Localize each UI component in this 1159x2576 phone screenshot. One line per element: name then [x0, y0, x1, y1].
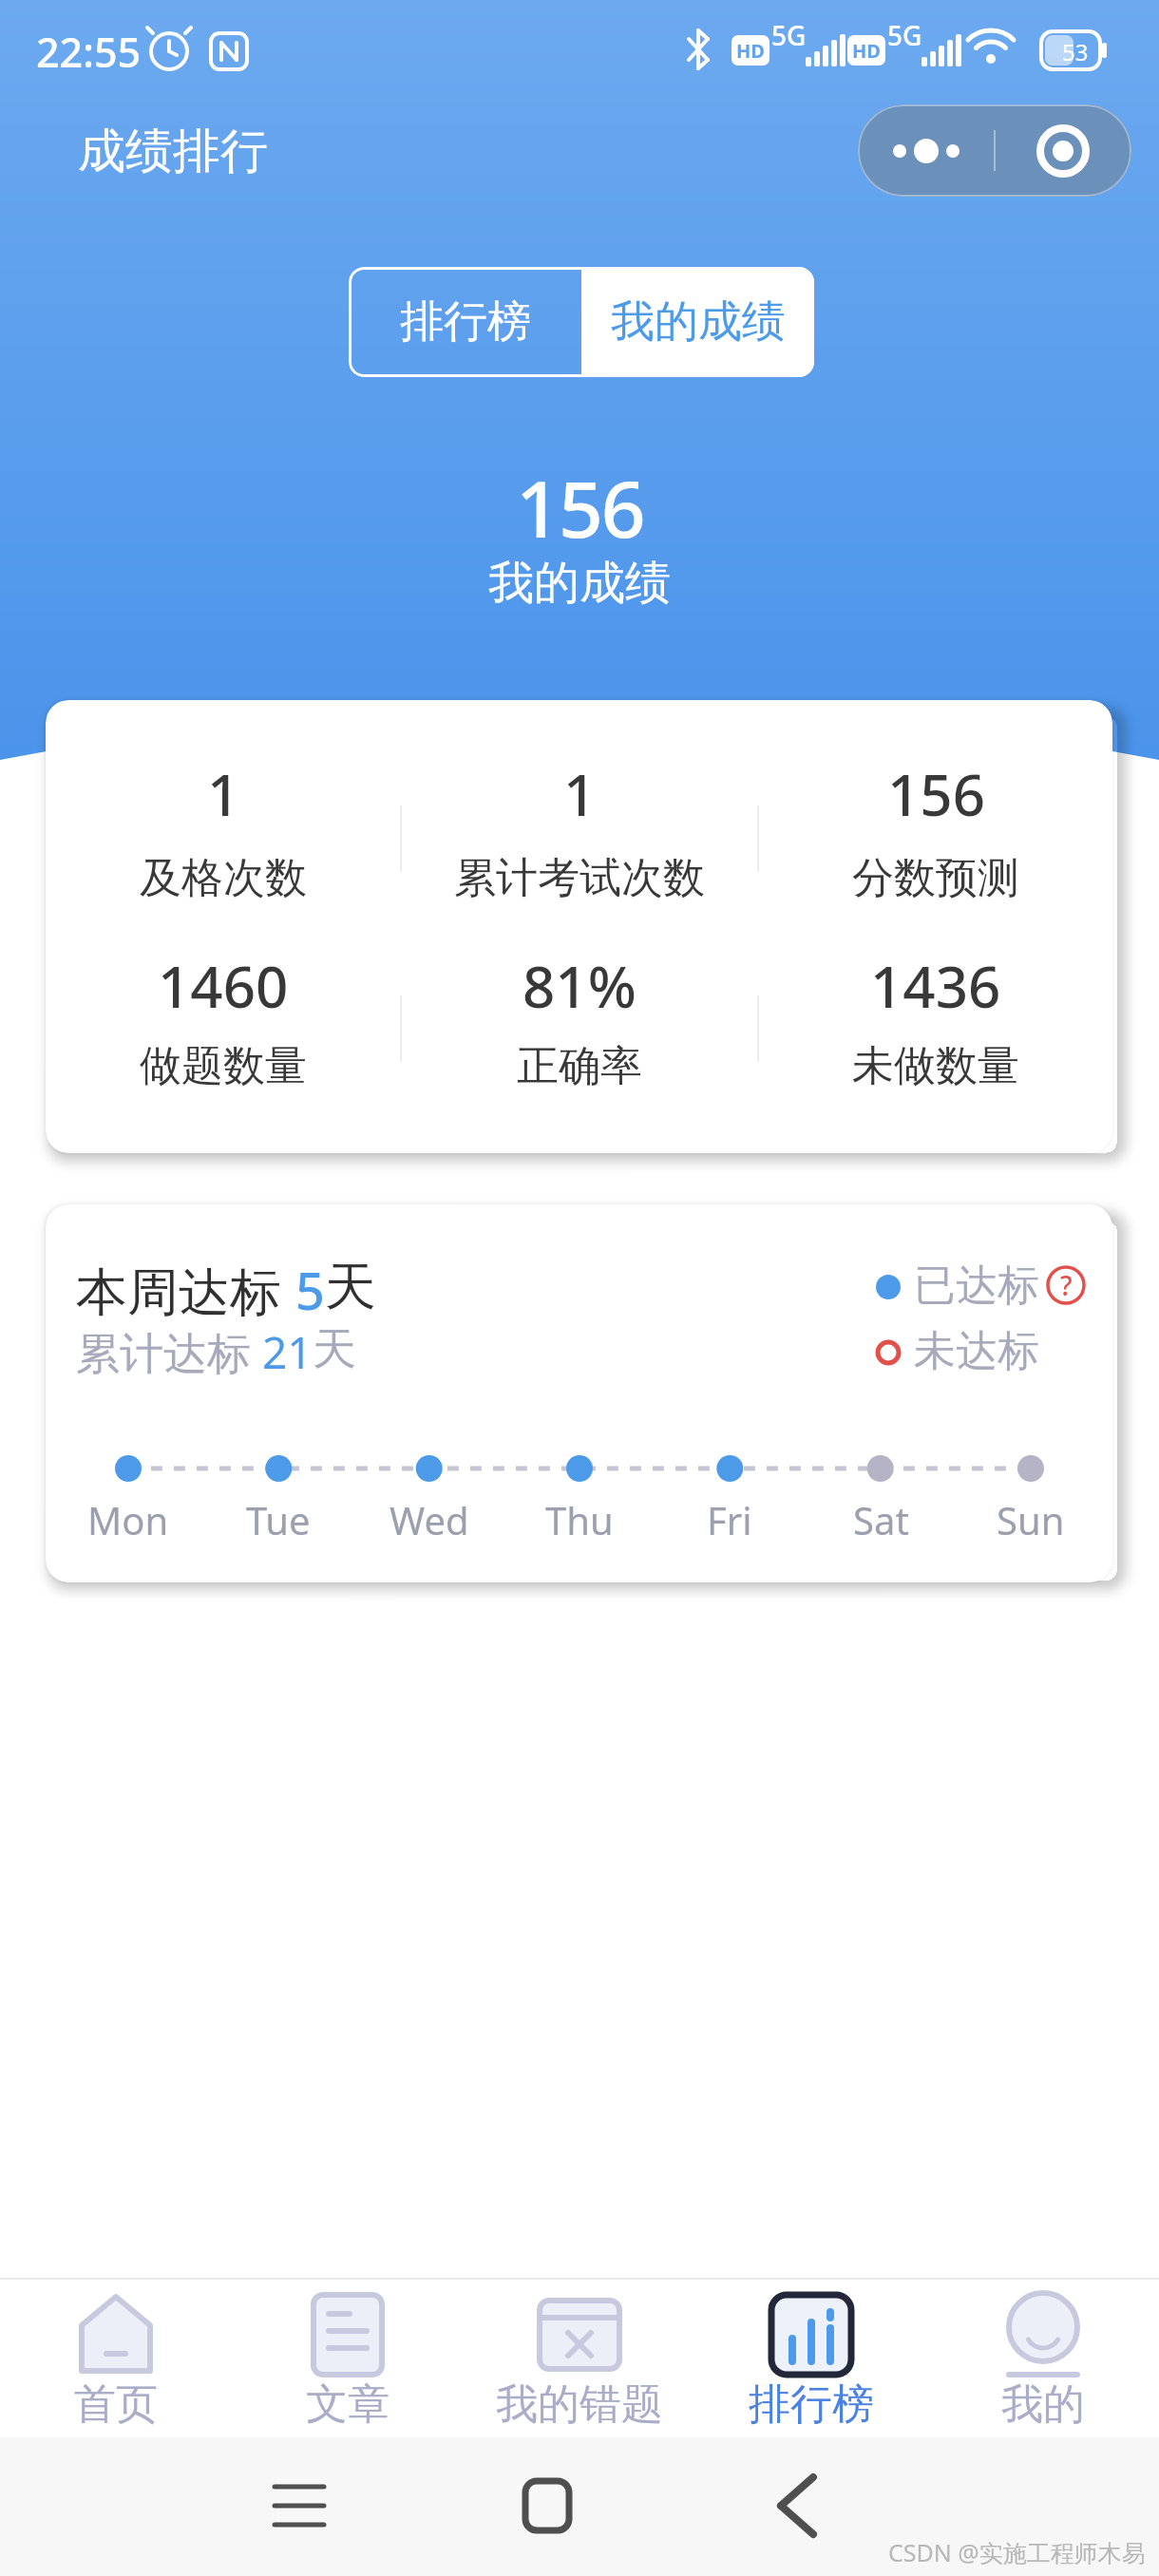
staticText: 156	[887, 755, 985, 833]
button[interactable]: 我的成绩	[581, 267, 814, 377]
staticText: HD	[736, 38, 765, 64]
button[interactable]: 我的错题	[464, 2278, 695, 2437]
staticText: 我的	[1001, 2378, 1085, 2431]
staticText: 本周达标	[76, 1255, 295, 1325]
staticText: 正确率	[517, 1040, 642, 1092]
staticText: 53	[1062, 36, 1089, 67]
staticText: 21	[262, 1322, 313, 1382]
staticText: 已达标	[914, 1260, 1039, 1312]
button[interactable]: ?	[1048, 1267, 1084, 1303]
staticText: Fri	[707, 1494, 752, 1545]
staticText: 做题数量	[140, 1040, 307, 1092]
staticText: 1	[563, 755, 597, 833]
staticText: Wed	[389, 1494, 469, 1545]
button[interactable]: 首页	[0, 2278, 232, 2437]
staticText: Thu	[545, 1494, 614, 1545]
staticText: 排行榜	[749, 2378, 874, 2431]
staticText: HD	[852, 38, 881, 64]
staticText: 成绩排行	[78, 122, 268, 181]
staticText: 天	[325, 1255, 376, 1319]
staticText: 累计达标	[76, 1322, 262, 1382]
button[interactable]	[858, 104, 995, 197]
staticText: CSDN @实施工程师木易	[888, 2536, 1146, 2568]
staticText: 我的成绩	[611, 294, 786, 350]
staticText: 5	[295, 1255, 325, 1325]
staticText: 及格次数	[140, 852, 307, 904]
staticText: 排行榜	[400, 294, 531, 350]
staticText: 81%	[522, 947, 636, 1025]
staticText: 156	[516, 454, 644, 560]
staticText: 累计考试次数	[454, 852, 705, 904]
button[interactable]: 排行榜	[349, 267, 581, 377]
staticText: 分数预测	[852, 852, 1019, 904]
staticText: 天	[313, 1322, 356, 1377]
button[interactable]: 文章	[232, 2278, 464, 2437]
staticText: Mon	[87, 1494, 169, 1545]
staticText: 文章	[306, 2378, 389, 2431]
staticText: 我的成绩	[488, 555, 671, 612]
staticText: 我的错题	[496, 2378, 663, 2431]
staticText: ?	[1060, 1267, 1073, 1303]
staticText: 1460	[158, 947, 289, 1025]
staticText: Sun	[997, 1494, 1065, 1545]
staticText: 1	[207, 755, 240, 833]
staticText: 22:55	[36, 24, 142, 80]
staticText: 未达标	[914, 1325, 1039, 1377]
staticText: 5G	[771, 17, 807, 53]
staticText: Sat	[853, 1494, 909, 1545]
staticText: 未做数量	[852, 1040, 1019, 1092]
staticText: Tue	[246, 1494, 311, 1545]
staticText: 1436	[870, 947, 1001, 1025]
staticText: 首页	[74, 2378, 158, 2431]
button[interactable]: 排行榜	[695, 2278, 927, 2437]
button[interactable]	[995, 104, 1131, 197]
button[interactable]: 我的	[927, 2278, 1159, 2437]
staticText: 5G	[887, 17, 922, 53]
